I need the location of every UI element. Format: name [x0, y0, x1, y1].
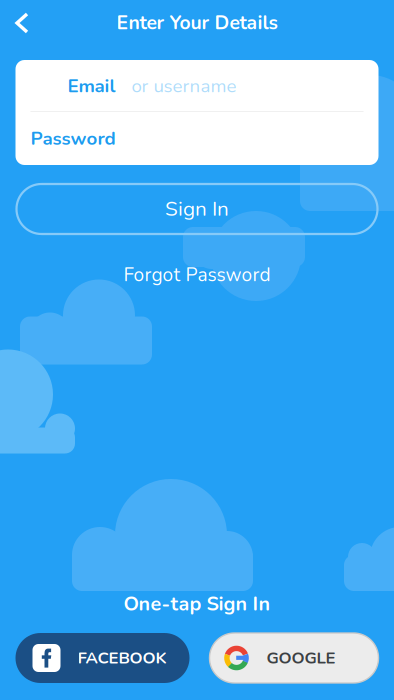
button[interactable]: GOOGLE — [209, 633, 378, 683]
staticText: Enter Your Details — [116, 10, 277, 36]
staticText: Email — [67, 73, 115, 99]
staticText: or username — [131, 73, 236, 99]
button[interactable]: FACEBOOK — [15, 633, 189, 683]
staticText: Forgot Password — [123, 262, 270, 288]
button[interactable]: Back — [0, 0, 44, 46]
staticText: Sign In — [165, 195, 229, 223]
staticText: GOOGLE — [266, 647, 335, 669]
button[interactable]: Sign In — [16, 184, 377, 234]
button[interactable]: Forgot Password — [67, 258, 327, 292]
staticText: Password — [30, 126, 115, 151]
staticText: FACEBOOK — [77, 647, 166, 669]
staticText: One-tap Sign In — [123, 590, 270, 617]
